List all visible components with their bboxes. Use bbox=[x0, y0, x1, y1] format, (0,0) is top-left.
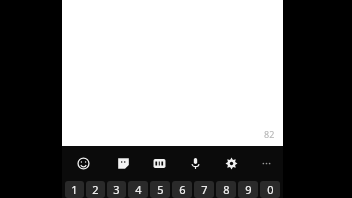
button[interactable]: 5 bbox=[150, 181, 170, 198]
staticText: 2 bbox=[92, 182, 99, 197]
staticText: 5 bbox=[157, 182, 164, 197]
button[interactable]: 0 bbox=[260, 181, 280, 198]
button[interactable]: 7 bbox=[194, 181, 214, 198]
staticText: 3 bbox=[113, 182, 120, 197]
button[interactable]: 8 bbox=[216, 181, 236, 198]
button[interactable]: More options bbox=[249, 153, 283, 173]
button[interactable]: Emoji bbox=[62, 153, 105, 173]
staticText: 82 bbox=[264, 128, 275, 140]
staticText: 9 bbox=[245, 182, 252, 197]
button[interactable]: Stickers bbox=[105, 153, 141, 173]
staticText: 1 bbox=[71, 182, 78, 197]
button[interactable]: 6 bbox=[172, 181, 192, 198]
button[interactable]: 2 bbox=[86, 181, 105, 198]
button[interactable]: GIF bbox=[141, 153, 177, 173]
button[interactable]: 9 bbox=[238, 181, 258, 198]
button[interactable]: Settings bbox=[213, 153, 249, 173]
staticText: 7 bbox=[201, 182, 208, 197]
button[interactable]: Voice input bbox=[177, 153, 213, 173]
button[interactable]: 4 bbox=[128, 181, 148, 198]
staticText: 6 bbox=[179, 182, 186, 197]
button[interactable]: 1 bbox=[65, 181, 84, 198]
staticText: 0 bbox=[267, 182, 274, 197]
staticText: 8 bbox=[223, 182, 230, 197]
staticText: 4 bbox=[135, 182, 142, 197]
button[interactable]: 3 bbox=[107, 181, 126, 198]
